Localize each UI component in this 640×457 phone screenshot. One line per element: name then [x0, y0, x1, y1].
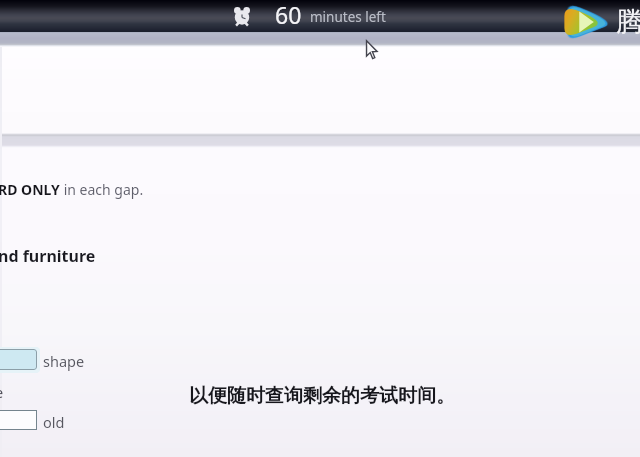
- button[interactable]: RD ONLY: [0, 180, 144, 199]
- button[interactable]: Remaining time: [231, 5, 253, 28]
- staticText: RD ONLY: [0, 180, 60, 199]
- staticText: nd furniture: [0, 245, 96, 267]
- staticText: minutes left: [310, 8, 386, 26]
- staticText: shape: [43, 351, 85, 371]
- staticText: old: [43, 412, 65, 432]
- button[interactable]: Tencent Video: [560, 0, 640, 46]
- staticText: 腾: [616, 5, 640, 39]
- button[interactable]: [0, 410, 37, 430]
- staticText: e: [0, 382, 4, 402]
- staticText: 以便随时查询剩余的考试时间。: [189, 384, 455, 408]
- staticText: in each gap.: [60, 180, 144, 199]
- button[interactable]: [0, 349, 37, 370]
- staticText: 60: [275, 0, 302, 30]
